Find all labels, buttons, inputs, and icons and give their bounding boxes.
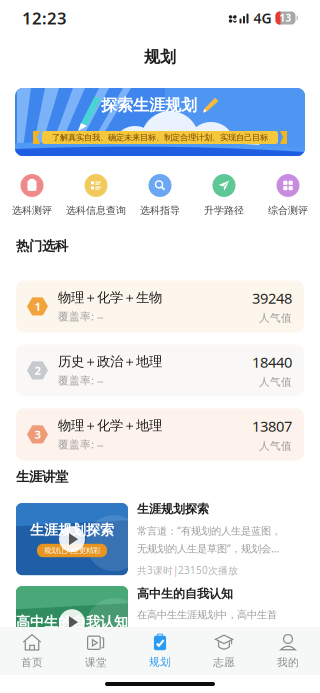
staticText: 18440	[252, 352, 292, 372]
button[interactable]: 综合测评	[256, 174, 320, 217]
staticText: 热门选科	[16, 238, 68, 254]
staticText: 人气值	[259, 311, 292, 325]
staticText: 我的	[277, 656, 299, 669]
button[interactable]: 首页	[0, 627, 64, 675]
staticText: 3	[34, 427, 40, 442]
staticText: 高中生的自我认知	[137, 586, 233, 601]
button[interactable]: 生涯规划探索	[16, 503, 304, 575]
staticText: 覆盖率: --	[58, 437, 103, 451]
staticText: 无规划的人生是草图”，规划会…	[137, 541, 279, 555]
staticText: 1	[34, 299, 40, 314]
staticText: 2	[34, 363, 40, 378]
button[interactable]: 升学路径	[192, 174, 256, 217]
button[interactable]: 我的	[256, 627, 320, 675]
staticText: 4G	[253, 8, 271, 28]
staticText: 综合测评	[268, 204, 308, 217]
button[interactable]: 选科信息查询	[64, 174, 128, 217]
button[interactable]: 规划	[128, 627, 192, 675]
button[interactable]: 3	[16, 408, 304, 460]
button[interactable]: 1	[16, 280, 304, 332]
button[interactable]: 2	[16, 344, 304, 396]
staticText: 志愿	[213, 656, 235, 669]
button[interactable]: 课堂	[64, 627, 128, 675]
staticText: 13807	[252, 416, 292, 436]
staticText: 历史＋政治＋地理	[58, 353, 162, 370]
staticText: 探索生涯规划	[101, 95, 197, 115]
staticText: 39248	[252, 288, 292, 308]
staticText: 共3课时|23150次播放	[137, 563, 238, 577]
staticText: 覆盖率: --	[58, 373, 103, 387]
staticText: 选科测评	[12, 204, 52, 217]
button[interactable]: 高中生的自我认知	[16, 586, 304, 658]
staticText: 人气值	[259, 375, 292, 389]
staticText: 覆盖率: --	[58, 309, 103, 323]
staticText: 生涯规划探索	[137, 501, 209, 516]
button[interactable]: 探索生涯规划	[15, 88, 305, 156]
staticText: 高中生的自我认知	[16, 613, 128, 631]
staticText: 选科信息查询	[66, 204, 126, 217]
staticText: 在高中生生涯规划中，高中生首	[137, 608, 277, 621]
staticText: 常言道：“有规划的人生是蓝图，	[137, 523, 281, 537]
staticText: 12:23	[22, 7, 67, 29]
staticText: 规划	[149, 655, 171, 669]
button[interactable]: 选科指导	[128, 174, 192, 217]
staticText: 物理＋化学＋生物	[58, 289, 162, 306]
button[interactable]: 选科测评	[0, 174, 64, 217]
staticText: 人气值	[259, 439, 292, 453]
staticText: 首页	[21, 656, 43, 669]
staticText: 课堂	[85, 656, 107, 669]
staticText: 生涯规划探索	[30, 521, 114, 539]
staticText: 生涯讲堂	[16, 468, 68, 485]
staticText: 13	[279, 11, 291, 25]
staticText: 了解真实自我、确定未来目标、制定合理计划、实现自己目标	[52, 132, 268, 143]
staticText: 选科指导	[140, 204, 180, 217]
button[interactable]: 志愿	[192, 627, 256, 675]
staticText: 物理＋化学＋地理	[58, 417, 162, 434]
staticText: 升学路径	[204, 204, 244, 217]
staticText: 规划让人生更精彩	[44, 546, 100, 555]
staticText: 规划	[144, 47, 176, 67]
